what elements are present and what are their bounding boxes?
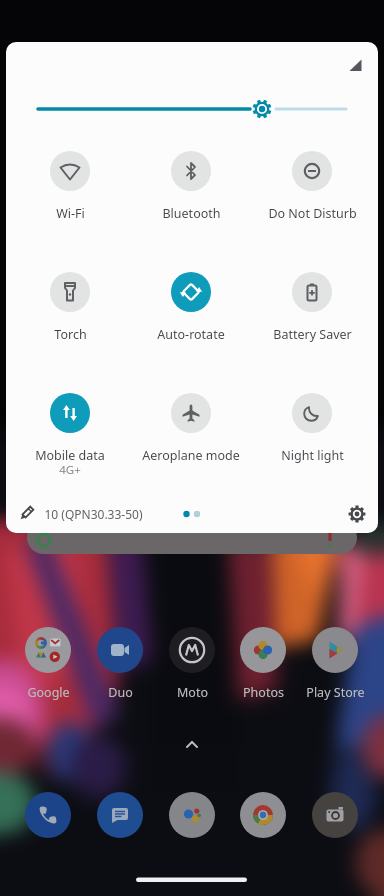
button[interactable] bbox=[169, 792, 215, 838]
button[interactable] bbox=[50, 393, 90, 433]
button[interactable] bbox=[50, 272, 90, 312]
staticText: Battery Saver bbox=[273, 326, 352, 343]
button[interactable] bbox=[169, 627, 215, 673]
button[interactable] bbox=[50, 151, 90, 191]
staticText: Aeroplane mode bbox=[142, 447, 240, 464]
button[interactable] bbox=[343, 500, 371, 528]
staticText: Mobile data bbox=[35, 447, 105, 464]
button[interactable] bbox=[292, 151, 332, 191]
staticText: Play Store bbox=[306, 684, 365, 701]
staticText: Wi-Fi bbox=[56, 205, 85, 222]
staticText: Google bbox=[27, 684, 70, 701]
staticText: Duo bbox=[108, 684, 133, 701]
staticText: Bluetooth bbox=[162, 205, 221, 222]
button[interactable] bbox=[97, 627, 143, 673]
button[interactable] bbox=[171, 272, 211, 312]
button[interactable] bbox=[97, 792, 143, 838]
button[interactable] bbox=[292, 393, 332, 433]
button[interactable] bbox=[312, 792, 358, 838]
button[interactable] bbox=[312, 627, 358, 673]
staticText: Torch bbox=[54, 326, 87, 343]
staticText: Do Not Disturb bbox=[268, 205, 357, 222]
button[interactable] bbox=[171, 151, 211, 191]
staticText: Night light bbox=[281, 447, 344, 464]
button[interactable] bbox=[25, 627, 71, 673]
staticText: Auto-rotate bbox=[157, 326, 225, 343]
staticText: Moto bbox=[177, 684, 208, 701]
staticText: Photos bbox=[243, 684, 284, 701]
button[interactable] bbox=[171, 393, 211, 433]
button[interactable] bbox=[240, 792, 286, 838]
staticText: 10 (QPN30.33-50) bbox=[44, 506, 143, 522]
button[interactable] bbox=[240, 627, 286, 673]
button[interactable] bbox=[12, 500, 40, 528]
button[interactable] bbox=[27, 521, 357, 554]
button[interactable] bbox=[25, 792, 71, 838]
staticText: 4G+ bbox=[59, 462, 81, 478]
button[interactable] bbox=[292, 272, 332, 312]
